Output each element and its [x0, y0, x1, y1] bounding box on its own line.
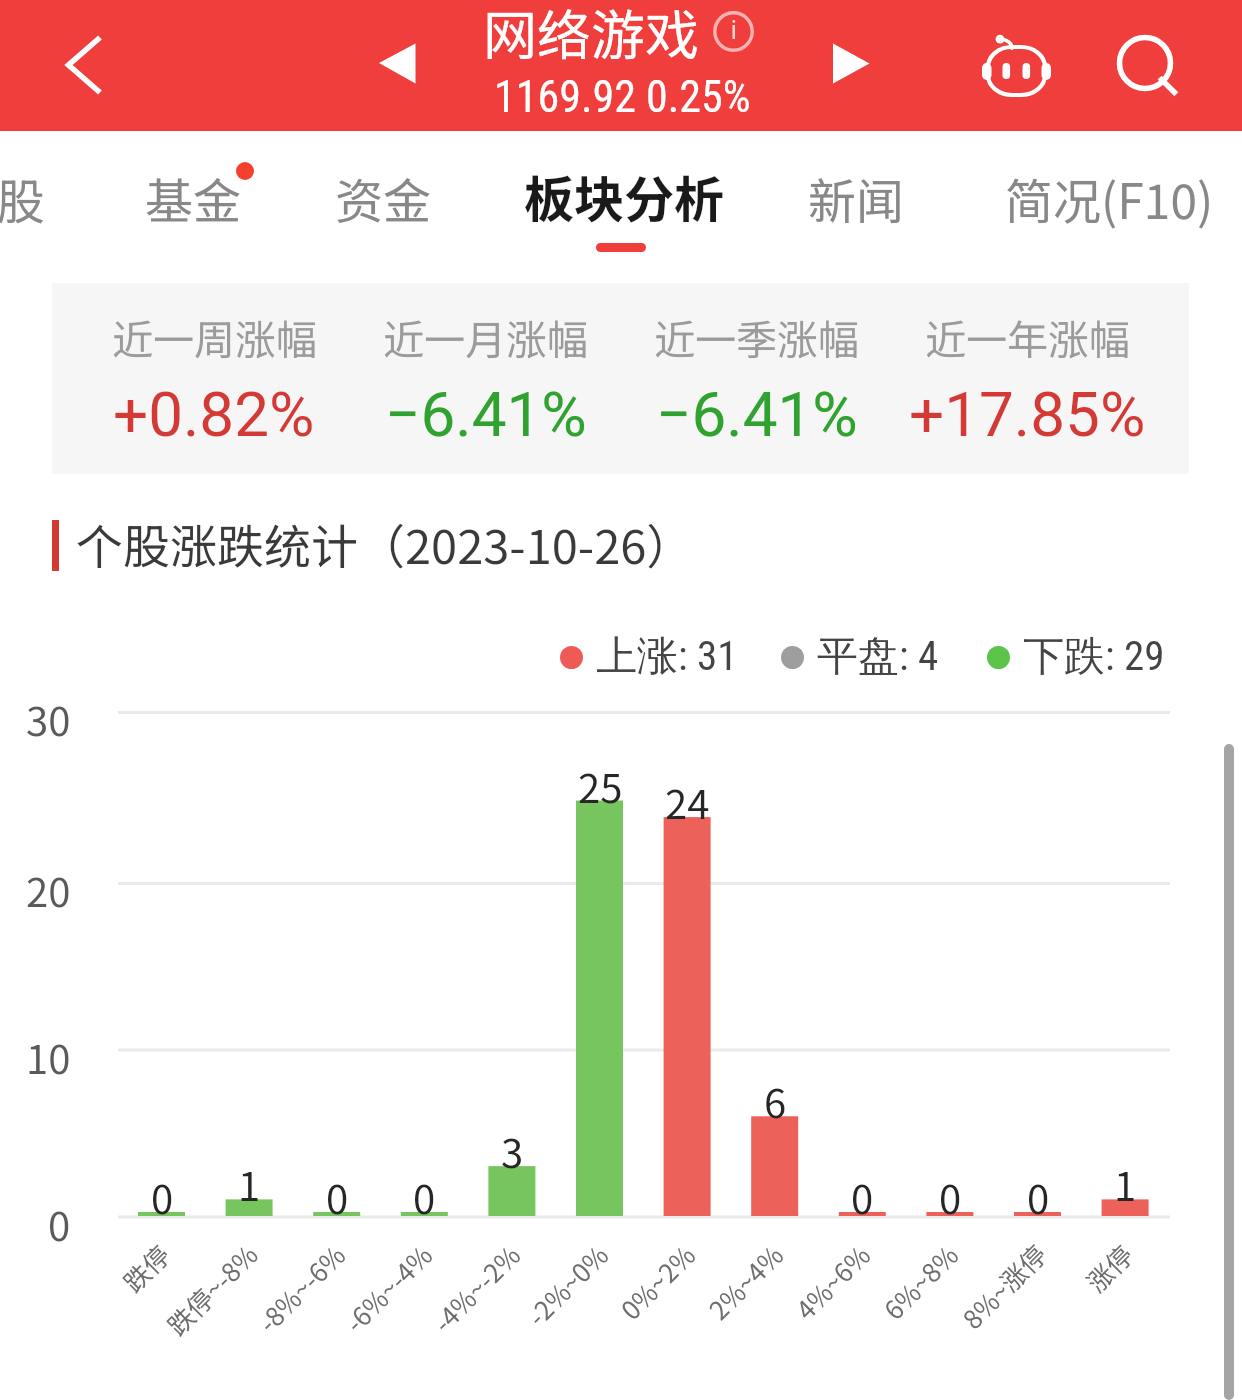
button[interactable]: 近一周涨幅 — [78, 283, 350, 474]
staticText: 新闻 — [808, 163, 905, 233]
staticText: 近一季涨幅 — [654, 307, 859, 366]
staticText: 基金 — [145, 163, 242, 233]
staticText: 股 — [0, 163, 46, 233]
staticText: 30 — [26, 690, 71, 744]
staticText: 2%~4% — [699, 1236, 791, 1327]
staticText: 涨停 — [1077, 1236, 1141, 1300]
staticText: -2%~0% — [518, 1236, 616, 1334]
staticText: 6 — [764, 1072, 787, 1120]
staticText: 1 — [238, 1155, 261, 1203]
button[interactable]: 平盘: 4 — [781, 630, 939, 684]
button[interactable]: 股 — [0, 163, 46, 233]
staticText: 上涨: 31 — [596, 631, 738, 683]
button[interactable]: 资金 — [335, 163, 432, 233]
button[interactable]: 近一季涨幅 — [621, 283, 892, 474]
button[interactable]: Next sector — [798, 16, 898, 116]
button[interactable]: AI assistant — [958, 10, 1072, 120]
staticText: 1 — [1114, 1155, 1137, 1203]
staticText: 0 — [48, 1195, 71, 1249]
staticText: 0 — [326, 1168, 349, 1216]
staticText: 近一月涨幅 — [383, 307, 588, 366]
button[interactable]: 基金 — [145, 163, 260, 233]
staticText: 6%~8% — [874, 1236, 966, 1327]
staticText: 近一周涨幅 — [112, 307, 317, 366]
staticText: 24 — [665, 773, 710, 821]
staticText: 平盘: 4 — [817, 631, 939, 683]
staticText: 0 — [413, 1168, 436, 1216]
button[interactable]: Previous sector — [350, 16, 450, 116]
staticText: 资金 — [335, 163, 432, 233]
staticText: 4%~6% — [786, 1236, 878, 1327]
staticText: −6.41% — [385, 378, 587, 451]
staticText: -8%~-6% — [249, 1236, 353, 1340]
staticText: 25 — [578, 757, 623, 805]
staticText: -6%~-4% — [336, 1236, 440, 1340]
button[interactable]: 上涨: 31 — [560, 630, 738, 684]
staticText: 8%~涨停 — [953, 1236, 1054, 1337]
staticText: 近一年涨幅 — [925, 307, 1130, 366]
staticText: 0 — [1027, 1168, 1050, 1216]
staticText: 下跌: 29 — [1023, 631, 1165, 683]
staticText: 板块分析 — [524, 160, 724, 232]
staticText: +17.85% — [909, 378, 1146, 451]
staticText: 个股涨跌统计（2023-10-26） — [76, 509, 694, 577]
staticText: 0 — [151, 1168, 174, 1216]
staticText: 简况(F10) — [1005, 163, 1214, 233]
staticText: −6.41% — [656, 378, 858, 451]
button[interactable]: Search — [1090, 10, 1204, 120]
staticText: 跌停~-8% — [158, 1236, 265, 1343]
staticText: i — [731, 16, 737, 45]
staticText: 0 — [851, 1168, 874, 1216]
staticText: 3 — [501, 1122, 524, 1170]
staticText: 1169.92 0.25% — [494, 71, 751, 123]
staticText: 10 — [26, 1028, 71, 1082]
button[interactable]: 简况(F10) — [1005, 163, 1214, 233]
staticText: +0.82% — [113, 378, 315, 451]
staticText: 网络游戏 — [483, 0, 699, 70]
button[interactable]: 近一年涨幅 — [892, 283, 1163, 474]
staticText: 20 — [26, 861, 71, 915]
staticText: 0%~2% — [611, 1236, 703, 1327]
button[interactable]: 板块分析 — [524, 160, 724, 232]
button[interactable]: 新闻 — [808, 163, 905, 233]
button[interactable]: 下跌: 29 — [987, 630, 1165, 684]
staticText: 0 — [939, 1168, 962, 1216]
staticText: -4%~-2% — [424, 1236, 528, 1340]
button[interactable]: Back — [16, 16, 136, 116]
button[interactable]: 近一月涨幅 — [350, 283, 621, 474]
staticText: 跌停 — [114, 1236, 178, 1300]
